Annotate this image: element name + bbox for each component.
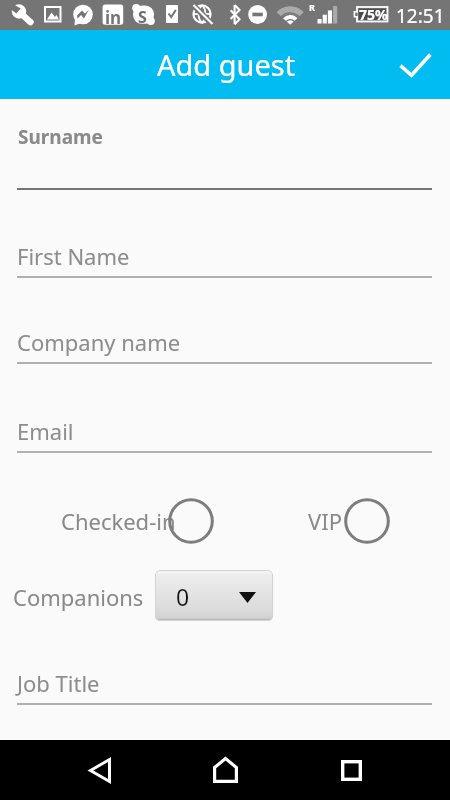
staticText: in [105,6,122,29]
button[interactable]: Job Title [17,659,432,705]
staticText: S [138,6,147,28]
staticText: Email [17,416,74,446]
button[interactable]: Home [195,740,256,800]
button[interactable]: Back [69,740,130,800]
staticText: Add guest [157,45,296,84]
button[interactable]: Checked-in [61,497,224,545]
staticText: Company name [17,327,181,357]
button[interactable]: Save [384,34,446,96]
button[interactable]: Email [17,407,432,453]
staticText: VIP [308,506,342,536]
staticText: First Name [17,241,130,271]
staticText: Companions [13,582,144,612]
staticText: 0 [176,581,190,612]
staticText: R [309,1,315,13]
button[interactable]: 0 [155,570,273,621]
staticText: Surname [18,124,103,150]
button[interactable]: Recents [321,740,382,800]
button[interactable] [17,120,432,190]
button[interactable]: Company name [17,318,432,364]
staticText: 75% [359,5,388,24]
button[interactable]: First Name [17,232,432,278]
staticText: Checked-in [61,506,176,536]
staticText: Job Title [17,668,100,698]
button[interactable]: VIP [308,497,390,545]
staticText: 12:51 [396,3,445,29]
